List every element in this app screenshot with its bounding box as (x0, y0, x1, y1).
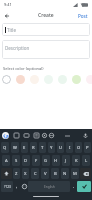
button[interactable]: Color (16, 75, 25, 84)
staticText: Z (15, 171, 18, 177)
button[interactable]: T (39, 142, 46, 153)
button[interactable]: V (41, 168, 49, 179)
staticText: I (69, 145, 71, 151)
staticText: R (32, 145, 35, 151)
button[interactable]: G (42, 155, 50, 166)
button[interactable]: U (57, 142, 64, 153)
button[interactable]: Post (74, 11, 92, 21)
button[interactable]: More (63, 131, 72, 140)
button[interactable]: S (12, 155, 20, 166)
staticText: B (54, 171, 57, 177)
staticText: C (34, 171, 37, 177)
button[interactable]: Period (70, 181, 77, 192)
button[interactable]: C (31, 168, 39, 179)
button[interactable]: F (32, 155, 40, 166)
button[interactable]: E (21, 142, 28, 153)
staticText: K (75, 158, 78, 164)
staticText: , (16, 183, 18, 190)
button[interactable]: Back (0, 9, 13, 22)
button[interactable]: J (62, 155, 70, 166)
button[interactable]: Y (48, 142, 55, 153)
staticText: F (35, 158, 38, 164)
button[interactable]: R (30, 142, 37, 153)
staticText: G (44, 158, 48, 164)
button[interactable]: Emoji (20, 181, 28, 192)
staticText: Y (50, 145, 53, 151)
staticText: Description (5, 45, 30, 51)
staticText: A (5, 158, 8, 164)
button[interactable]: N (61, 168, 69, 179)
button[interactable]: Color (30, 75, 39, 84)
staticText: E (23, 145, 26, 151)
button[interactable]: Comma (13, 181, 20, 192)
staticText: Select color (optional) (3, 66, 44, 71)
button[interactable]: Backspace (80, 168, 91, 179)
button[interactable]: P (84, 142, 91, 153)
button[interactable]: Translate (47, 131, 55, 139)
button[interactable]: I (66, 142, 73, 153)
button[interactable]: Settings (40, 131, 48, 139)
button[interactable]: Title (2, 23, 90, 36)
button[interactable]: Color (44, 75, 53, 84)
button[interactable]: Description (2, 40, 90, 59)
button[interactable]: M (71, 168, 79, 179)
staticText: U (59, 145, 63, 151)
button[interactable]: Google (2, 132, 9, 139)
staticText: Post (78, 13, 88, 19)
button[interactable]: A (2, 155, 10, 166)
button[interactable]: D (22, 155, 30, 166)
button[interactable]: GIF (22, 131, 30, 139)
button[interactable]: B (51, 168, 59, 179)
staticText: . (73, 183, 75, 190)
staticText: 9:41 (4, 2, 12, 7)
staticText: J (65, 158, 67, 164)
staticText: Q (3, 145, 7, 151)
button[interactable]: H (52, 155, 60, 166)
button[interactable]: Color (58, 75, 67, 84)
button[interactable]: Stickers (12, 131, 20, 139)
staticText: W (13, 145, 17, 151)
staticText: M (73, 171, 77, 177)
button[interactable]: K (72, 155, 80, 166)
staticText: O (77, 145, 81, 151)
staticText: L (85, 158, 88, 164)
staticText: Title (7, 27, 16, 33)
staticText: S (15, 158, 18, 164)
staticText: H (54, 158, 58, 164)
button[interactable]: Shift (1, 168, 12, 179)
button[interactable]: Enter (77, 181, 91, 192)
staticText: T (41, 145, 44, 151)
button[interactable]: W (11, 142, 19, 153)
button[interactable]: Q (1, 142, 9, 153)
staticText: X (24, 171, 27, 177)
staticText: P (86, 145, 89, 151)
staticText: D (24, 158, 28, 164)
button[interactable]: Clipboard (32, 131, 40, 139)
button[interactable]: Voice input (81, 131, 90, 140)
button[interactable]: Z (13, 168, 20, 179)
staticText: N (63, 171, 67, 177)
button[interactable]: Color (86, 75, 92, 84)
button[interactable]: Color (72, 75, 81, 84)
button[interactable]: No color (2, 75, 11, 84)
staticText: V (44, 171, 47, 177)
button[interactable]: X (22, 168, 29, 179)
staticText: English (44, 185, 55, 189)
button[interactable]: ?123 (1, 181, 13, 192)
button[interactable]: L (82, 155, 90, 166)
button[interactable]: O (75, 142, 82, 153)
button[interactable]: English (28, 181, 70, 192)
staticText: Create (38, 12, 54, 19)
staticText: ?123 (4, 185, 11, 189)
